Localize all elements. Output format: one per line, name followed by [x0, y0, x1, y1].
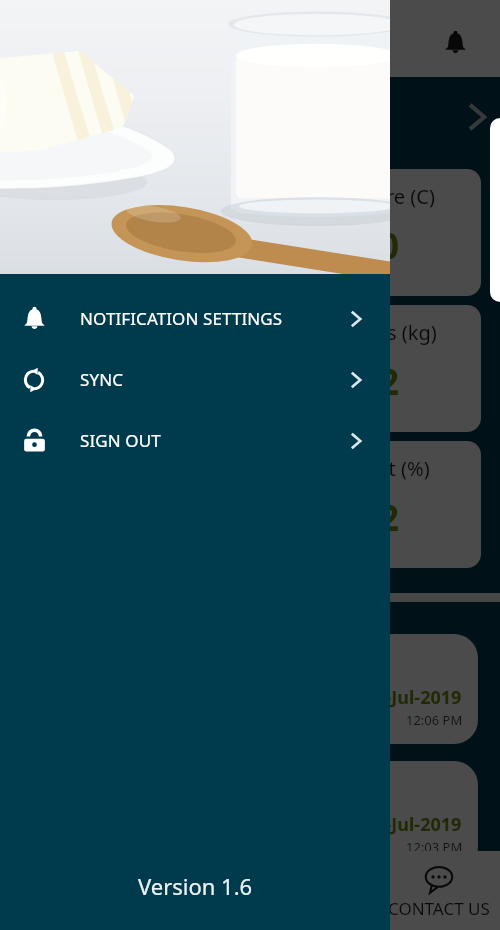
button[interactable]: Temperature (C) — [20, 169, 481, 296]
button[interactable]: SIGN OUT — [0, 410, 390, 471]
staticText: 12-Jul-2019 — [365, 685, 462, 710]
staticText: Temperature (C) — [284, 183, 435, 210]
button[interactable]: Fat (%) — [20, 441, 481, 568]
staticText: 0 — [379, 222, 400, 270]
button[interactable]: 12-Jul-2019 — [20, 634, 478, 744]
button[interactable]: Mass (kg) — [20, 305, 481, 432]
staticText: 12:03 PM — [406, 838, 463, 856]
button[interactable]: 11-Jul-2019 — [20, 761, 478, 871]
staticText: NOTIFICATION SETTINGS — [80, 307, 283, 330]
button[interactable]: CONTACT US — [363, 853, 500, 930]
button[interactable]: Notifications — [433, 20, 477, 64]
staticText: SYNC — [80, 368, 124, 391]
staticText: 11-Jul-2019 — [365, 812, 462, 837]
staticText: 12:06 PM — [406, 711, 463, 729]
button[interactable]: Next — [455, 95, 499, 139]
button[interactable]: SYNC — [0, 349, 390, 410]
staticText: Fat (%) — [367, 455, 430, 482]
staticText: Version 1.6 — [138, 871, 253, 901]
button[interactable]: NOTIFICATION SETTINGS — [0, 288, 390, 349]
staticText: 2 — [379, 494, 400, 542]
staticText: 2 — [379, 358, 400, 406]
staticText: SIGN OUT — [80, 429, 161, 452]
staticText: Mass (kg) — [348, 319, 437, 346]
staticText: CONTACT US — [388, 897, 490, 920]
